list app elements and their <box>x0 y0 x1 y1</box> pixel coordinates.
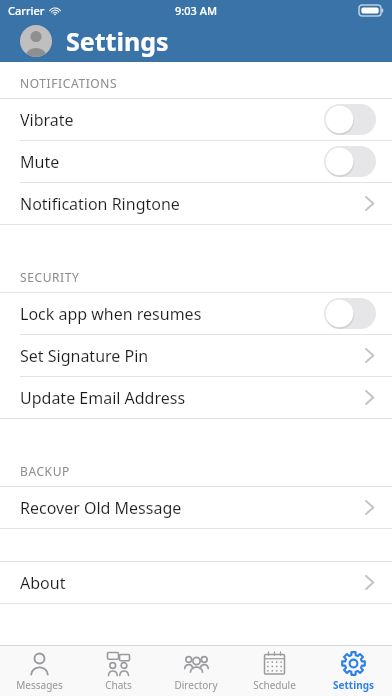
button[interactable]: Schedule <box>235 646 313 696</box>
staticText: Messages <box>16 678 63 692</box>
staticText: Update Email Address <box>20 387 365 409</box>
staticText: Notification Ringtone <box>20 193 365 215</box>
staticText: Settings <box>66 24 169 58</box>
button[interactable]: Mute <box>0 141 392 182</box>
staticText: Recover Old Message <box>20 497 365 519</box>
staticText: Schedule <box>253 678 296 692</box>
button[interactable]: Recover Old Message <box>0 487 392 528</box>
staticText: Settings <box>333 678 374 692</box>
staticText: SECURITY <box>20 269 80 285</box>
button[interactable]: Chats <box>79 646 157 696</box>
staticText: Set Signature Pin <box>20 345 365 367</box>
button[interactable]: Lock app when resumes <box>0 293 392 334</box>
staticText: Lock app when resumes <box>20 303 324 325</box>
staticText: NOTIFICATIONS <box>20 75 118 91</box>
button[interactable]: Messages <box>0 646 78 696</box>
staticText: Vibrate <box>20 109 324 131</box>
button[interactable]: Profile <box>20 25 52 57</box>
staticText: Carrier <box>8 3 45 18</box>
button[interactable]: Update Email Address <box>0 377 392 418</box>
button[interactable]: About <box>0 562 392 603</box>
staticText: Chats <box>105 678 132 692</box>
button[interactable]: Settings <box>314 646 392 696</box>
button[interactable]: Directory <box>157 646 235 696</box>
staticText: Mute <box>20 151 324 173</box>
staticText: BACKUP <box>20 463 70 479</box>
staticText: 9:03 AM <box>175 3 218 18</box>
button[interactable]: Notification Ringtone <box>0 183 392 224</box>
staticText: About <box>20 572 365 594</box>
staticText: Directory <box>174 678 218 692</box>
button[interactable]: Vibrate <box>0 99 392 140</box>
button[interactable]: Set Signature Pin <box>0 335 392 376</box>
